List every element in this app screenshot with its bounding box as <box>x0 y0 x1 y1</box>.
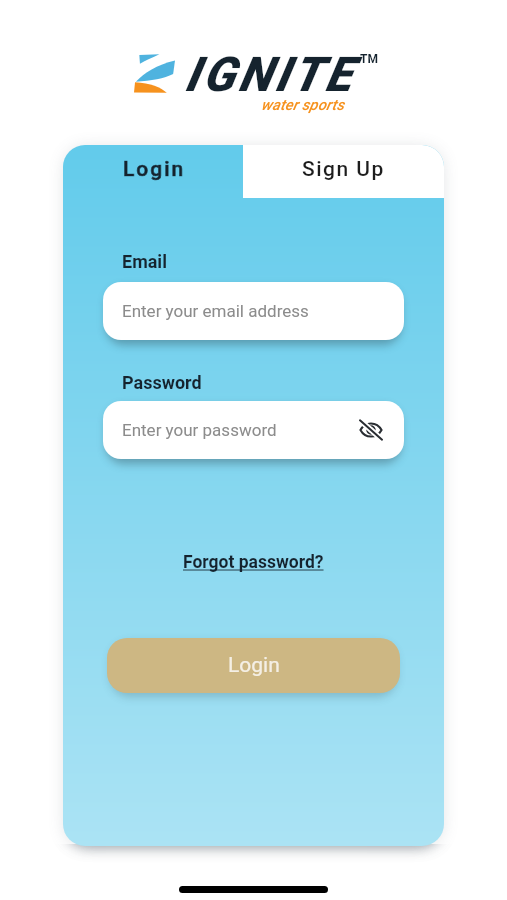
staticText: Forgot password? <box>183 552 324 573</box>
staticText: Enter your email address <box>122 301 309 321</box>
staticText: Login <box>123 157 186 182</box>
staticText: IGNITE <box>185 46 356 102</box>
staticText: Sign Up <box>302 157 385 182</box>
button[interactable]: Sign Up <box>243 145 444 198</box>
staticText: Email <box>122 251 167 272</box>
staticText: Login <box>228 653 280 678</box>
staticText: Login <box>123 157 186 182</box>
staticText: Enter your password <box>122 420 277 440</box>
staticText: water sports <box>261 96 345 114</box>
button[interactable]: Enter your password <box>103 401 404 459</box>
button[interactable]: Enter your email address <box>103 282 404 340</box>
button[interactable]: Login <box>107 638 400 693</box>
button[interactable]: Show password <box>352 411 390 449</box>
staticText: Password <box>122 372 202 393</box>
button[interactable]: Login <box>63 145 243 198</box>
staticText: TM <box>360 52 378 66</box>
button[interactable]: Forgot password? <box>180 545 327 579</box>
